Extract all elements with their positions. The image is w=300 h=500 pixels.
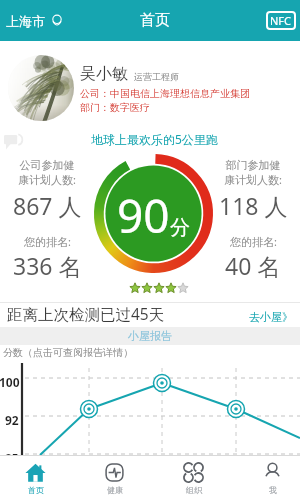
button[interactable]: 我 [233,456,300,500]
staticText: 分数（点击可查阅报告详情） [3,346,133,359]
staticText: 100 [0,374,20,390]
button[interactable]: 上海市 [0,9,68,33]
staticText: 分 [170,215,190,240]
staticText: 健康 [107,485,123,495]
staticText: 上海市 [6,13,45,29]
staticText: 距离上次检测已过45天 [7,303,165,324]
staticText: 部门参加健 康计划人数: [224,158,282,187]
staticText: 小屋报告 [128,329,172,343]
staticText: 您的排名: [24,234,71,249]
staticText: 吴小敏 [80,64,128,84]
staticText: 组织 [186,485,202,495]
staticText: 您的排名: [230,234,277,249]
button[interactable]: 去小屋》 [246,307,296,327]
staticText: 去小屋》 [249,310,293,324]
staticText: 867 人 [13,190,82,221]
staticText: 40 名 [225,250,281,281]
staticText: 公司参加健 康计划人数: [18,158,76,187]
button[interactable]: 组织 [154,456,233,500]
staticText: 336 名 [13,250,82,281]
staticText: 92 [5,412,19,428]
staticText: 首页 [28,485,44,495]
button[interactable]: 首页 [0,456,75,500]
staticText: 我 [269,485,277,495]
button[interactable]: 健康评分 90 分 [94,154,213,273]
staticText: NFC [270,13,292,28]
staticText: 公司：中国电信上海理想信息产业集团 [80,87,250,100]
button[interactable]: 分数趋势图 [0,360,300,455]
staticText: 118 人 [219,190,288,221]
staticText: 85 [5,450,19,466]
button[interactable]: 健康 [75,456,154,500]
staticText: 地球上最欢乐的5公里跑 [91,131,218,147]
button[interactable]: NFC [266,11,296,30]
button[interactable]: 头像 [8,55,74,121]
staticText: 90 [117,184,170,247]
staticText: 首页 [140,11,170,30]
staticText: 部门：数字医疗 [80,101,150,114]
staticText: 运营工程师 [134,71,179,82]
